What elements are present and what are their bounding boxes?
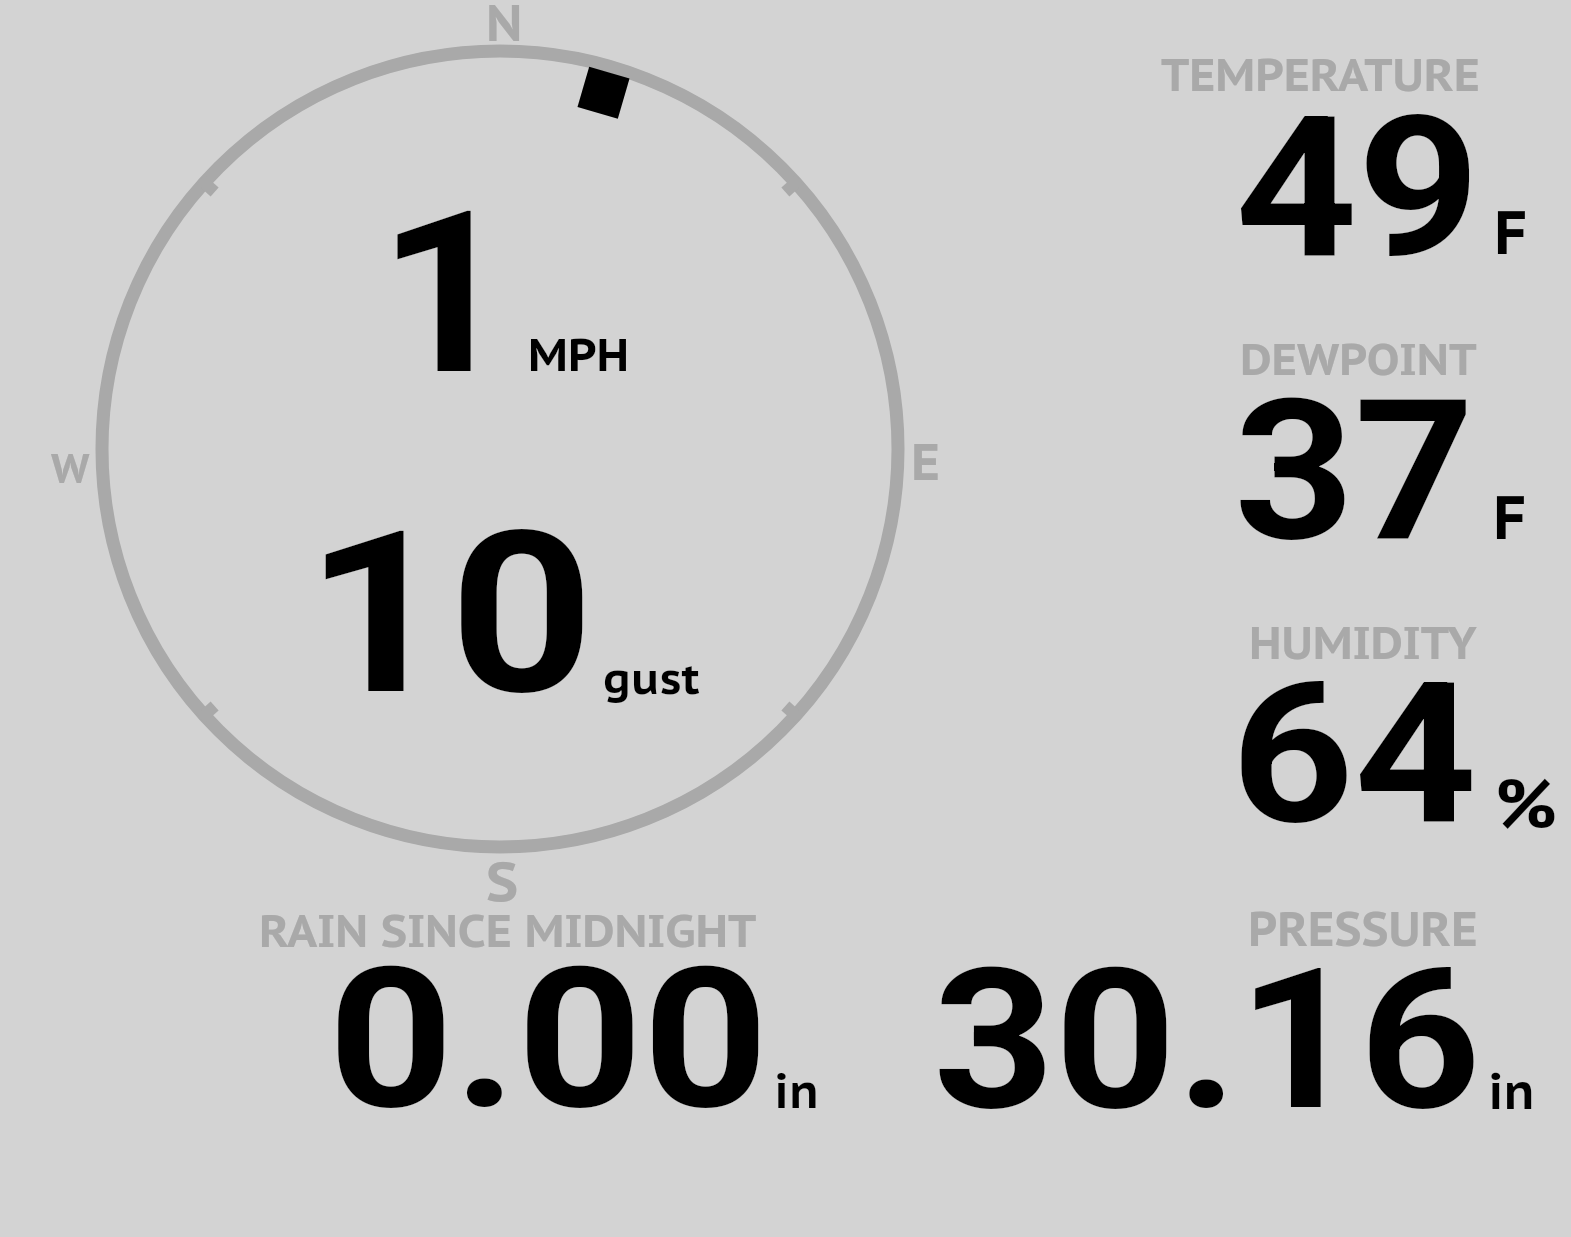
staticText: TEMPERATURE: [1161, 44, 1480, 104]
staticText: F: [1494, 193, 1528, 271]
button[interactable]: Wind speed 1 MPH, gusting 10, compass: [60, 10, 940, 890]
staticText: MPH: [528, 324, 629, 384]
staticText: DEWPOINT: [1240, 329, 1477, 387]
staticText: 30.16: [933, 927, 1481, 1154]
staticText: HUMIDITY: [1249, 612, 1477, 672]
button[interactable]: Pressure 30.16 in: [900, 895, 1560, 1125]
staticText: 37: [1234, 358, 1475, 585]
staticText: gust: [603, 648, 700, 706]
button[interactable]: Temperature 49 F: [1140, 40, 1571, 290]
button[interactable]: Humidity 64 percent: [1140, 610, 1571, 860]
staticText: PRESSURE: [1248, 898, 1478, 959]
staticText: E: [911, 428, 940, 494]
staticText: %: [1495, 759, 1557, 847]
staticText: 1: [378, 163, 514, 426]
staticText: F: [1493, 478, 1527, 556]
staticText: N: [486, 0, 523, 55]
staticText: RAIN SINCE MIDNIGHT: [259, 900, 757, 960]
staticText: W: [51, 441, 90, 494]
staticText: 49: [1235, 75, 1480, 302]
button[interactable]: Rain since midnight 0.00 in: [240, 895, 840, 1125]
staticText: 64: [1231, 641, 1477, 868]
staticText: in: [1488, 1059, 1535, 1122]
staticText: 10: [305, 483, 595, 746]
staticText: S: [486, 844, 519, 916]
staticText: in: [774, 1060, 819, 1121]
staticText: 0.00: [328, 926, 769, 1153]
button[interactable]: Dewpoint 37 F: [1140, 325, 1571, 575]
